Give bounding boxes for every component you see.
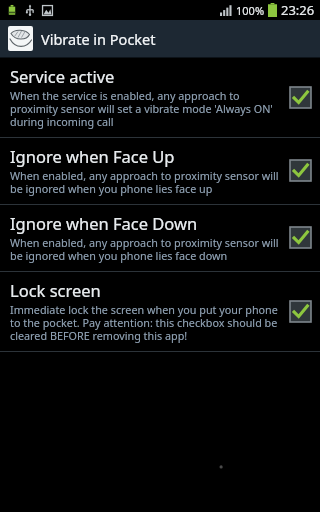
button[interactable]: Toggle setting — [289, 300, 312, 323]
button[interactable]: Lock screen — [0, 272, 320, 351]
button[interactable]: Toggle setting — [289, 159, 312, 182]
staticText: Ignore when Face Up — [10, 145, 175, 167]
staticText: 100% — [236, 3, 265, 18]
staticText: 23:26 — [281, 1, 315, 19]
staticText: When enabled, any approach to proximity … — [10, 235, 283, 263]
staticText: When the service is enabled, any approac… — [10, 88, 283, 129]
button[interactable]: Toggle setting — [289, 86, 312, 109]
button[interactable]: Ignore when Face Up — [0, 138, 320, 204]
staticText: Vibrate in Pocket — [41, 29, 156, 49]
staticText: Ignore when Face Down — [10, 212, 198, 234]
staticText: Immediate lock the screen when you put y… — [10, 302, 283, 343]
button[interactable]: Toggle setting — [289, 226, 312, 249]
button[interactable]: Ignore when Face Down — [0, 205, 320, 271]
staticText: Service active — [10, 65, 115, 87]
staticText: Lock screen — [10, 279, 101, 301]
staticText: When enabled, any approach to proximity … — [10, 168, 283, 196]
button[interactable]: Service active — [0, 58, 320, 137]
